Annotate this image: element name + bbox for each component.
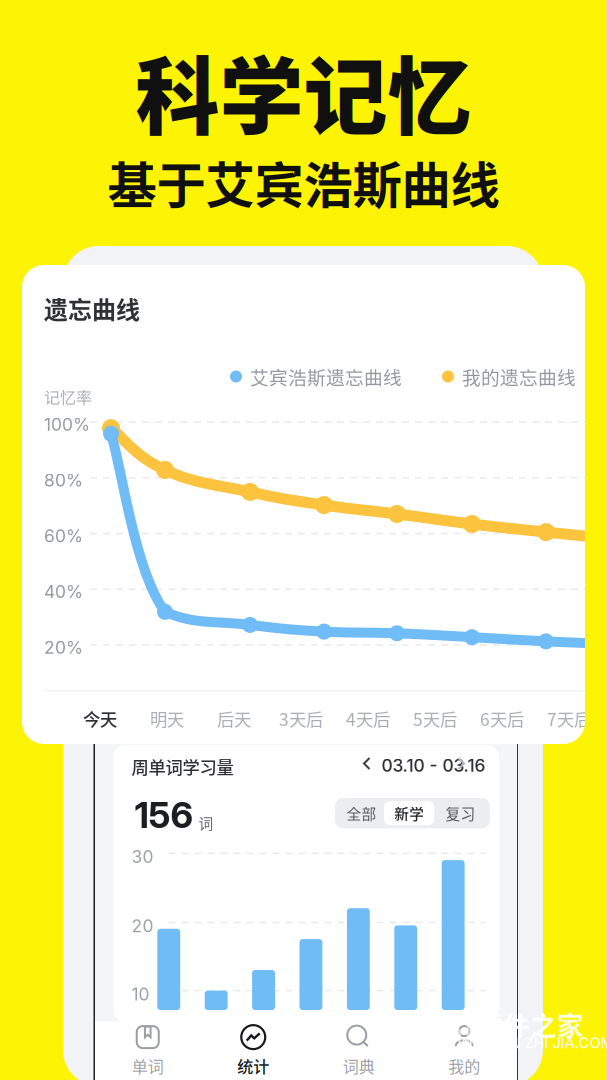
staticText: 今天 [83, 706, 117, 731]
staticText: 03.10 - 03.16 [381, 755, 485, 776]
staticText: 复习 [445, 802, 475, 824]
button[interactable]: 统计 [200, 1021, 306, 1080]
staticText: 新学 [394, 803, 424, 824]
staticText: 后天 [217, 706, 251, 731]
staticText: 我的遗忘曲线 [462, 363, 576, 390]
button[interactable]: 新学 [335, 798, 385, 822]
button[interactable]: 词典 [306, 1021, 411, 1080]
staticText: 记忆率 [44, 385, 92, 408]
staticText: 80% [44, 470, 83, 491]
staticText: 6天后 [480, 706, 524, 731]
staticText: 词典 [343, 1054, 375, 1077]
staticText: 周单词学习量 [131, 754, 233, 779]
staticText: 20% [44, 637, 83, 658]
staticText: 10 [131, 984, 149, 1005]
staticText: 156 [134, 793, 193, 837]
staticText: 30 [131, 846, 153, 867]
staticText: 4天后 [346, 706, 390, 731]
staticText: 统计 [237, 1054, 269, 1077]
button[interactable]: 我的 [411, 1021, 517, 1080]
staticText: 3天后 [279, 706, 323, 731]
staticText: 遗忘曲线 [44, 291, 140, 326]
staticText: 明天 [150, 706, 184, 731]
staticText: 全部 [346, 802, 376, 824]
staticText: 20 [131, 915, 153, 936]
staticText: 60% [44, 525, 83, 546]
staticText: 我的 [448, 1054, 480, 1077]
staticText: 单词 [132, 1054, 164, 1077]
button[interactable]: 03.10 - 03.16 [356, 751, 480, 777]
staticText: 词 [198, 812, 213, 833]
staticText: YING JIAN ZHI JIA.COM [447, 1034, 607, 1052]
staticText: 艾宾浩斯遗忘曲线 [250, 363, 402, 390]
staticText: 科学记忆 [135, 30, 471, 152]
staticText: 100% [44, 414, 90, 435]
button[interactable]: 全部 [335, 798, 380, 828]
staticText: 基于艾宾浩斯曲线 [107, 146, 499, 217]
staticText: 硬件之家 [476, 1005, 584, 1043]
button[interactable]: 复习 [335, 798, 380, 828]
button[interactable]: 单词 [95, 1021, 200, 1080]
staticText: 7天后 [547, 706, 591, 731]
staticText: 5天后 [413, 706, 457, 731]
staticText: 40% [44, 581, 83, 602]
